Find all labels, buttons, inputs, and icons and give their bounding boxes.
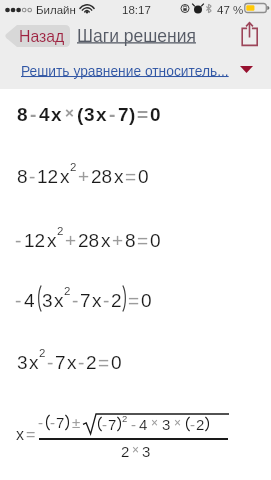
staticText: 2 (111, 290, 122, 311)
staticText: - (15, 230, 22, 251)
staticText: = (26, 426, 36, 444)
staticText: 3 (162, 416, 171, 433)
staticText: - (78, 352, 85, 373)
staticText: Билайн (36, 4, 76, 17)
staticText: x (29, 352, 39, 373)
staticText: x (51, 104, 62, 125)
staticText: 47 % (217, 4, 244, 17)
staticText: 8 (17, 104, 28, 125)
staticText: Решить уравнение относитель... (21, 64, 229, 79)
staticText: Назад (19, 28, 65, 46)
staticText: 0 (138, 166, 149, 187)
staticText: x (16, 426, 24, 444)
staticText: x (96, 104, 107, 125)
staticText: Шаги решения (77, 26, 196, 46)
staticText: x (114, 166, 124, 187)
button[interactable]: Expand (234, 60, 259, 79)
staticText: 2 (122, 413, 128, 424)
staticText: 2 (70, 161, 77, 174)
staticText: - (131, 416, 136, 433)
staticText: - (29, 166, 36, 187)
staticText: = (98, 352, 110, 373)
staticText: 0 (141, 290, 152, 311)
staticText: 4 (39, 104, 50, 125)
staticText: 28 (78, 230, 100, 251)
staticText: - (15, 290, 22, 311)
staticText: 3 (84, 104, 95, 125)
staticText: 4 (24, 290, 35, 311)
staticText: + (65, 230, 77, 251)
staticText: 2 (39, 347, 46, 360)
staticText: 12 (37, 166, 59, 187)
staticText: = (137, 104, 149, 125)
staticText: 2 (57, 225, 64, 238)
staticText: 2 (64, 285, 71, 298)
staticText: 12 (24, 230, 46, 251)
staticText: x (92, 290, 102, 311)
staticText: 7 (118, 104, 129, 125)
staticText: 18:17 (122, 4, 151, 17)
staticText: 7 (56, 414, 65, 431)
button[interactable]: Решить уравнение относитель... (21, 62, 229, 80)
staticText: × (65, 104, 74, 121)
staticText: x (101, 230, 111, 251)
button[interactable]: Share (238, 20, 262, 48)
staticText: ± (72, 414, 81, 431)
staticText: x (54, 290, 64, 311)
staticText: - (30, 104, 37, 125)
staticText: × (174, 416, 182, 429)
staticText: 7 (80, 290, 91, 311)
staticText: = (125, 166, 137, 187)
staticText: ( (77, 104, 84, 125)
staticText: 2 (86, 352, 97, 373)
staticText: 2 (121, 443, 130, 460)
staticText: - (103, 290, 110, 311)
staticText: - (190, 416, 195, 433)
staticText: x (60, 166, 70, 187)
staticText: × (132, 443, 140, 456)
staticText: x (47, 230, 57, 251)
staticText: - (109, 104, 116, 125)
staticText: - (102, 416, 107, 433)
staticText: x (67, 352, 77, 373)
staticText: 28 (91, 166, 113, 187)
staticText: × (151, 416, 159, 429)
staticText: 0 (111, 352, 122, 373)
staticText: = (137, 230, 149, 251)
staticText: 7 (108, 416, 117, 433)
button[interactable]: Шаги решения (77, 25, 196, 46)
staticText: - (38, 414, 43, 431)
staticText: - (47, 352, 54, 373)
staticText: - (50, 414, 55, 431)
button[interactable]: Назад (4, 25, 70, 47)
staticText: 3 (142, 443, 151, 460)
staticText: 8 (17, 166, 28, 187)
staticText: + (112, 230, 124, 251)
staticText: ) (129, 104, 136, 125)
staticText: 4 (139, 416, 148, 433)
staticText: 0 (150, 230, 161, 251)
staticText: + (78, 166, 90, 187)
staticText: 3 (42, 290, 53, 311)
staticText: 0 (150, 104, 161, 125)
staticText: 2 (196, 416, 205, 433)
staticText: - (72, 290, 79, 311)
staticText: 8 (125, 230, 136, 251)
staticText: 3 (17, 352, 28, 373)
staticText: = (128, 290, 140, 311)
staticText: 7 (55, 352, 66, 373)
